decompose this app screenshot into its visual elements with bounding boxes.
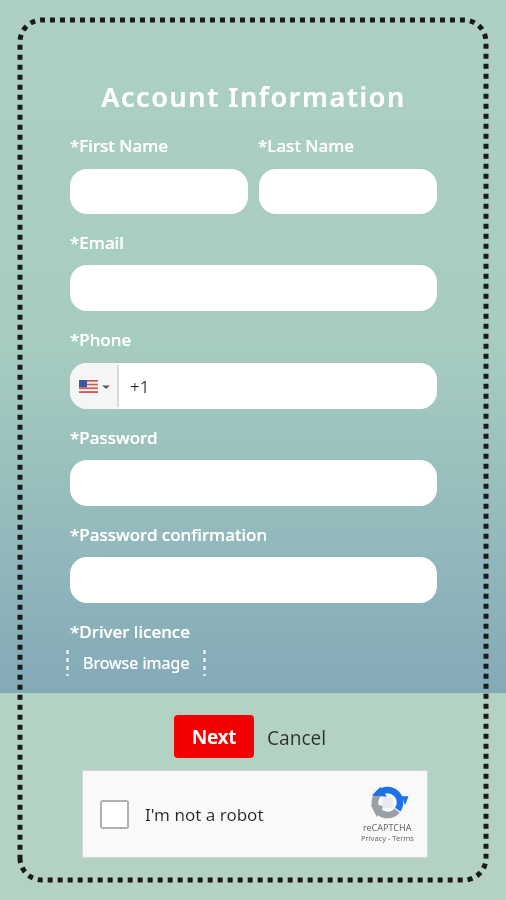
staticText: *Driver licence [70, 620, 190, 643]
staticText: Privacy - Terms [361, 833, 414, 843]
staticText: *Phone [70, 328, 132, 351]
staticText: *Email [70, 231, 124, 254]
staticText: Account Information [101, 78, 406, 115]
staticText: Next [192, 724, 237, 750]
staticText: I'm not a robot [145, 803, 264, 826]
button[interactable]: Cancel [263, 723, 331, 753]
staticText: *Password confirmation [70, 523, 268, 546]
staticText: *Password [70, 426, 158, 449]
button[interactable]: Browse image [66, 648, 206, 678]
staticText: Cancel [267, 725, 327, 751]
button[interactable] [70, 169, 248, 214]
staticText: +1 [130, 375, 150, 398]
staticText: *Last Name [258, 134, 355, 157]
button[interactable] [259, 169, 437, 214]
staticText: *First Name [70, 134, 169, 157]
button[interactable] [70, 557, 437, 603]
button[interactable] [70, 460, 437, 506]
staticText: Browse image [83, 652, 190, 674]
staticText: reCAPTCHA [363, 821, 412, 833]
button[interactable]: I'm not a robot checkbox [100, 800, 129, 829]
button[interactable] [70, 265, 437, 311]
button[interactable]: Select country code [70, 363, 437, 409]
button[interactable]: Next [174, 715, 254, 758]
button[interactable]: Select country code [70, 363, 118, 409]
